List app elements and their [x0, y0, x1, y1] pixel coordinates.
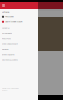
staticText: Copyright © 2019 All rights reserved [2, 83, 63, 100]
button[interactable]: New Stores & Locations [0, 57, 38, 63]
staticText: Browse Magazines [2, 48, 63, 97]
button[interactable]: Privacy Policy [0, 36, 38, 41]
button[interactable]: Online Catalog Request [0, 41, 38, 47]
button[interactable]: Close menu [1, 2, 6, 9]
staticText: Online Catalog Request [2, 38, 63, 86]
button[interactable]: Browse Magazines [0, 52, 38, 57]
staticText: Sign in / Create Account [5, 16, 63, 64]
staticText: Contact Us [2, 22, 63, 70]
staticText: Our Specialists [2, 27, 63, 76]
button[interactable]: Find a Store [0, 14, 38, 19]
button[interactable]: Feedback [0, 47, 38, 52]
staticText: Find a Store [5, 11, 63, 59]
button[interactable]: Sign in / Create Account [0, 19, 38, 24]
staticText: Privacy Policy [2, 33, 63, 81]
staticText: New Stores & Locations [2, 54, 63, 100]
staticText: Feedback [2, 43, 63, 92]
staticText: Version 5.2.1 [2, 85, 63, 100]
staticText: Hi there! [2, 6, 63, 54]
button[interactable]: Contact Us [0, 25, 38, 31]
button[interactable]: Our Specialists [0, 31, 38, 36]
